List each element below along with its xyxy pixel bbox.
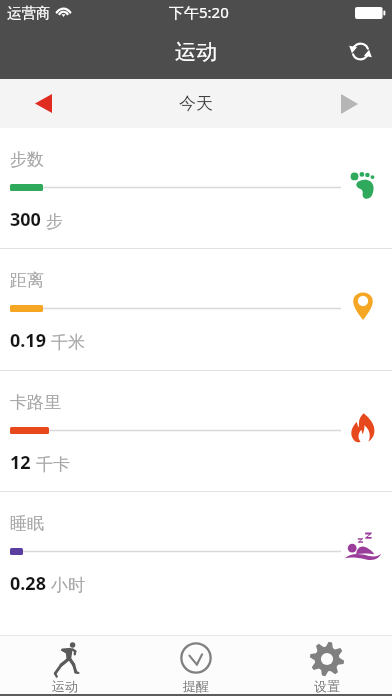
- staticText: 提醒: [183, 678, 209, 694]
- staticText: 睡眠: [10, 513, 44, 534]
- staticText: 今天: [179, 93, 213, 114]
- staticText: 0.19: [10, 328, 46, 353]
- staticText: 小时: [51, 575, 85, 596]
- staticText: 设置: [314, 678, 340, 694]
- staticText: 步: [46, 211, 63, 232]
- staticText: 运动: [175, 39, 217, 65]
- button[interactable]: 卡路里: [0, 371, 392, 491]
- staticText: 千米: [51, 332, 85, 353]
- staticText: 卡路里: [10, 392, 61, 413]
- button[interactable]: Refresh: [337, 28, 384, 75]
- button[interactable]: Previous day: [0, 79, 86, 128]
- button[interactable]: 睡眠: [0, 492, 392, 635]
- staticText: 运动: [52, 678, 78, 694]
- staticText: 步数: [10, 149, 44, 170]
- button[interactable]: 步数: [0, 128, 392, 248]
- staticText: 0.28: [10, 571, 46, 596]
- staticText: 下午5:20: [169, 2, 229, 22]
- button[interactable]: 运动: [0, 636, 130, 694]
- button[interactable]: 提醒: [130, 636, 261, 694]
- staticText: 运营商: [7, 4, 51, 22]
- button[interactable]: Next day: [306, 79, 392, 128]
- staticText: 12: [10, 450, 31, 475]
- staticText: 距离: [10, 270, 44, 291]
- button[interactable]: 设置: [261, 636, 392, 694]
- staticText: 300: [10, 207, 41, 232]
- staticText: 千卡: [36, 454, 70, 475]
- button[interactable]: 距离: [0, 249, 392, 370]
